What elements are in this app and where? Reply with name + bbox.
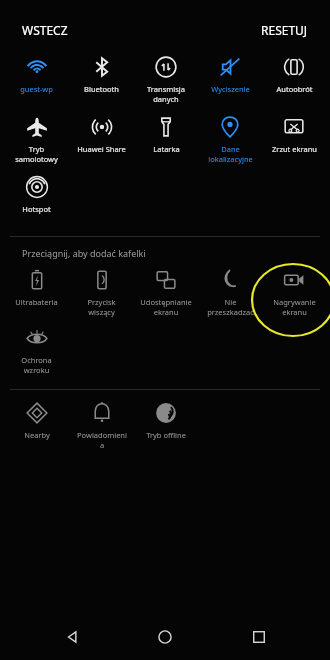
staticText: Hotspot: [22, 204, 51, 214]
staticText: Latarka: [153, 144, 180, 154]
staticText: WSTECZ: [22, 22, 68, 38]
button[interactable]: Back: [50, 615, 94, 659]
staticText: guest-wp: [20, 84, 53, 94]
staticText: Zrzut ekranu: [272, 144, 317, 154]
button[interactable]: Przycisk wiszący: [69, 267, 134, 317]
button[interactable]: Transmisja danych: [134, 54, 198, 104]
button[interactable]: Dane lokalizacyjne: [198, 114, 262, 164]
button[interactable]: Recent apps: [237, 615, 281, 659]
staticText: Huawei Share: [77, 144, 126, 154]
staticText: Transmisja danych: [147, 84, 185, 104]
staticText: Wyciszenie: [211, 84, 250, 94]
button[interactable]: Tryb offline: [134, 400, 198, 440]
staticText: Bluetooth: [84, 84, 119, 94]
staticText: Nearby: [24, 430, 50, 440]
button[interactable]: Nagrywanie ekranu: [262, 267, 326, 317]
button[interactable]: Zrzut ekranu: [262, 114, 326, 154]
button[interactable]: Autoobrót: [262, 54, 326, 94]
button[interactable]: Powiadomieni a: [69, 400, 134, 450]
button[interactable]: Ochrona wzroku: [4, 325, 69, 375]
button[interactable]: guest-wp: [4, 54, 69, 94]
staticText: Udostępnianie ekranu: [140, 297, 192, 317]
staticText: Dane lokalizacyjne: [208, 144, 253, 164]
button[interactable]: Bluetooth: [69, 54, 134, 94]
button[interactable]: Huawei Share: [69, 114, 134, 154]
staticText: RESETUJ: [261, 22, 308, 38]
staticText: Nie przeszkadzać: [207, 297, 254, 317]
button[interactable]: Nie przeszkadzać: [198, 267, 262, 317]
button[interactable]: Nearby: [4, 400, 69, 440]
button[interactable]: Ultrabateria: [4, 267, 69, 307]
staticText: Przycisk wiszący: [87, 297, 116, 317]
button[interactable]: Wyciszenie: [198, 54, 262, 94]
button[interactable]: Home: [143, 615, 187, 659]
button[interactable]: Tryb samolotowy: [4, 114, 69, 164]
staticText: Ultrabateria: [15, 297, 58, 307]
staticText: Autoobrót: [276, 84, 313, 94]
staticText: Powiadomieni a: [77, 430, 127, 450]
staticText: Przeciągnij, aby dodać kafelki: [22, 247, 146, 259]
button[interactable]: Latarka: [134, 114, 198, 154]
button[interactable]: RESETUJ: [257, 18, 312, 42]
staticText: Ochrona wzroku: [21, 355, 52, 375]
button[interactable]: Udostępnianie ekranu: [134, 267, 198, 317]
button[interactable]: Hotspot: [4, 174, 69, 214]
staticText: Nagrywanie ekranu: [273, 297, 316, 317]
staticText: Tryb offline: [146, 430, 186, 440]
staticText: Tryb samolotowy: [15, 144, 58, 164]
button[interactable]: WSTECZ: [18, 18, 72, 42]
